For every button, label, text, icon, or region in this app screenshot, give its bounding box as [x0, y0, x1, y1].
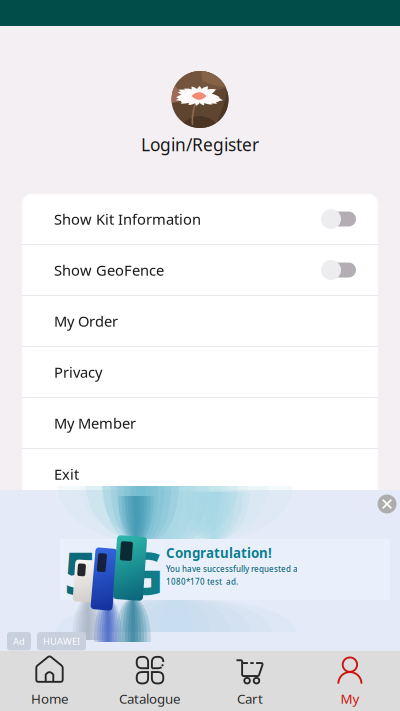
staticText: Ad	[13, 635, 25, 647]
staticText: 1080*170 test ad.	[166, 576, 238, 587]
staticText: Catalogue	[119, 690, 181, 707]
button[interactable]: Privacy	[22, 347, 378, 397]
button[interactable]: Close ad	[373, 490, 400, 518]
button[interactable]: Exit	[22, 449, 378, 499]
button[interactable]: Show GeoFence	[22, 245, 378, 295]
button[interactable]: My Member	[22, 398, 378, 448]
button[interactable]: Cart	[200, 651, 300, 711]
staticText: Privacy	[54, 362, 102, 382]
staticText: Show GeoFence	[54, 260, 164, 280]
staticText: Exit	[54, 464, 79, 484]
button[interactable]: My Order	[22, 296, 378, 346]
staticText: My Order	[54, 311, 118, 331]
button[interactable]: Catalogue	[100, 651, 200, 711]
button[interactable]: My	[300, 651, 400, 711]
staticText: Congratulation!	[166, 544, 272, 562]
staticText: Login/Register	[141, 133, 259, 156]
staticText: Show Kit Information	[54, 209, 201, 229]
staticText: My	[340, 690, 359, 707]
staticText: You have successfully requested a	[166, 564, 298, 574]
button[interactable]: Home	[0, 651, 100, 711]
staticText: G	[122, 533, 164, 611]
staticText: Home	[31, 690, 69, 707]
staticText: HUAWEI	[43, 635, 80, 647]
staticText: My Member	[54, 413, 136, 433]
button[interactable]: Show Kit Information	[22, 194, 378, 244]
staticText: Cart	[237, 690, 263, 707]
button[interactable]: About	[22, 500, 378, 550]
staticText: 5	[64, 533, 98, 611]
